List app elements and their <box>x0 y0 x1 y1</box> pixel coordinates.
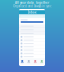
button[interactable] <box>19 35 45 38</box>
button[interactable] <box>19 55 45 58</box>
button[interactable] <box>19 42 45 45</box>
staticText: Inbox <box>28 11 36 14</box>
button[interactable]: Search <box>25 58 32 65</box>
button[interactable] <box>19 52 45 55</box>
button[interactable] <box>19 38 45 42</box>
button[interactable] <box>19 45 45 48</box>
staticText: Organised and always in sync <box>13 4 51 8</box>
button[interactable] <box>19 32 45 35</box>
button[interactable]: More <box>38 58 45 65</box>
button[interactable] <box>19 28 45 32</box>
button[interactable] <box>19 24 45 28</box>
button[interactable]: Home <box>19 58 25 65</box>
staticText: All your data, together <box>15 1 49 4</box>
button[interactable] <box>19 48 45 52</box>
button[interactable]: Alerts <box>32 58 38 65</box>
